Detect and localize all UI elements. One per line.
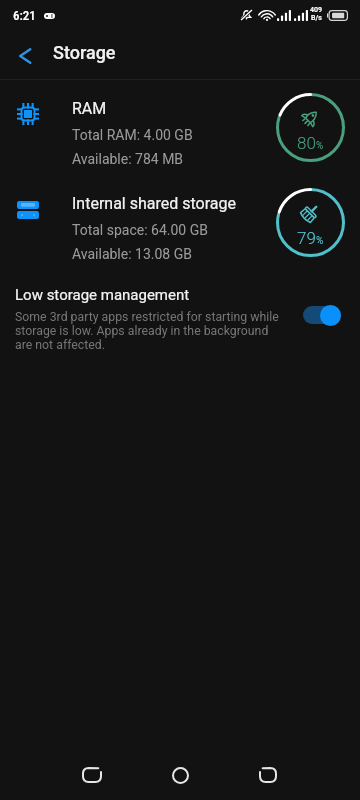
button[interactable]: RAM [0, 94, 360, 174]
button[interactable]: Home [156, 751, 204, 799]
staticText: 80 [297, 133, 316, 153]
staticText: Storage [53, 42, 116, 63]
staticText: Available: 784 MB [72, 151, 184, 167]
staticText: Some 3rd party apps restricted for start… [15, 310, 287, 352]
staticText: % [316, 140, 324, 152]
staticText: 79 [297, 228, 316, 248]
button[interactable]: Back [68, 751, 116, 799]
staticText: Low storage management [15, 286, 190, 304]
staticText: Total RAM: 4.00 GB [72, 127, 193, 143]
staticText: RAM [72, 99, 107, 118]
staticText: Available: 13.08 GB [72, 246, 192, 262]
staticText: B/s [311, 14, 322, 22]
button[interactable]: Low storage management toggle [303, 303, 342, 327]
staticText: Internal shared storage [72, 194, 236, 213]
button[interactable]: Low storage management [0, 282, 360, 352]
staticText: % [316, 235, 324, 247]
staticText: 6:21 [13, 8, 36, 23]
button[interactable]: Recent apps [244, 751, 292, 799]
button[interactable]: Internal shared storage [0, 189, 360, 269]
button[interactable]: Back [6, 31, 50, 75]
staticText: Total space: 64.00 GB [72, 222, 208, 238]
staticText: 409 [310, 6, 322, 14]
